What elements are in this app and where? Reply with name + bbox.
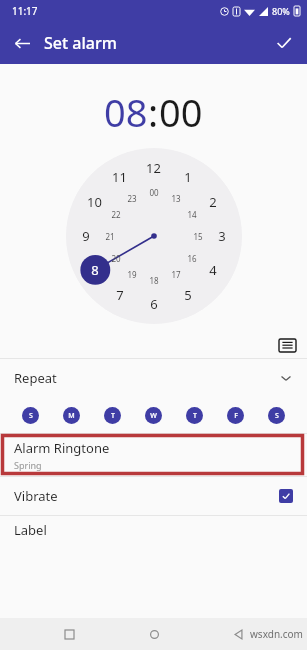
staticText: 00	[159, 86, 203, 138]
staticText: 1	[184, 168, 192, 186]
button[interactable]: Hour picker	[66, 148, 242, 324]
staticText: S	[29, 411, 33, 421]
staticText: 23	[127, 193, 137, 204]
button[interactable]: Vibrate	[0, 477, 307, 515]
staticText: 22	[111, 209, 121, 220]
staticText: 80%	[272, 5, 290, 17]
staticText: 08	[104, 86, 148, 138]
staticText: 6	[150, 295, 158, 313]
button[interactable]: Day 1 selected	[63, 407, 80, 424]
staticText: 8	[91, 261, 99, 279]
button[interactable]: 00	[159, 86, 203, 138]
staticText: 20	[111, 253, 121, 264]
staticText: M	[68, 411, 75, 421]
staticText: 17	[171, 269, 181, 280]
button[interactable]: Switch to keyboard input	[275, 333, 299, 357]
staticText: S	[275, 411, 279, 421]
staticText: 4	[209, 261, 217, 279]
staticText: 11:17	[12, 4, 38, 18]
staticText: T	[111, 411, 115, 421]
staticText: 18	[149, 275, 159, 286]
staticText: 14	[187, 209, 197, 220]
button[interactable]: Day 4 selected	[186, 407, 203, 424]
button[interactable]: Day 3 selected	[145, 407, 162, 424]
button[interactable]: Back	[227, 623, 249, 645]
staticText: Set alarm	[44, 32, 117, 54]
button[interactable]: Home	[143, 623, 165, 645]
staticText: 10	[87, 193, 102, 211]
staticText: Vibrate	[14, 487, 58, 505]
button[interactable]: 08	[104, 86, 148, 138]
button[interactable]: Save alarm	[267, 26, 301, 60]
staticText: 5	[184, 286, 192, 304]
staticText: Repeat	[14, 369, 57, 387]
staticText: 21	[105, 231, 115, 242]
button[interactable]: Day 0 selected	[22, 407, 39, 424]
staticText: T	[193, 411, 197, 421]
staticText: 19	[127, 269, 137, 280]
button[interactable]: Alarm Ringtone	[0, 434, 307, 476]
staticText: 11	[112, 168, 127, 186]
staticText: 3	[218, 227, 226, 245]
staticText: 9	[82, 227, 90, 245]
button[interactable]: Back	[5, 26, 39, 60]
staticText: F	[234, 411, 238, 421]
staticText: :	[148, 86, 159, 138]
button[interactable]: Day 2 selected	[104, 407, 121, 424]
staticText: 2	[209, 193, 217, 211]
staticText: 15	[193, 231, 203, 242]
button[interactable]: Label	[0, 516, 307, 544]
button[interactable]: Repeat	[0, 359, 307, 397]
staticText: Alarm Ringtone	[14, 439, 110, 457]
staticText: 7	[116, 286, 124, 304]
staticText: 12	[146, 159, 161, 177]
staticText: 00	[149, 187, 159, 198]
staticText: wsxdn.com	[250, 627, 303, 641]
staticText: W	[150, 411, 157, 421]
button[interactable]: Day 5 selected	[227, 407, 244, 424]
button[interactable]: Recent apps	[58, 623, 80, 645]
staticText: Spring	[14, 459, 42, 471]
staticText: Label	[14, 521, 47, 539]
staticText: 13	[171, 193, 181, 204]
staticText: 16	[187, 253, 197, 264]
button[interactable]: Day 6 selected	[268, 407, 285, 424]
